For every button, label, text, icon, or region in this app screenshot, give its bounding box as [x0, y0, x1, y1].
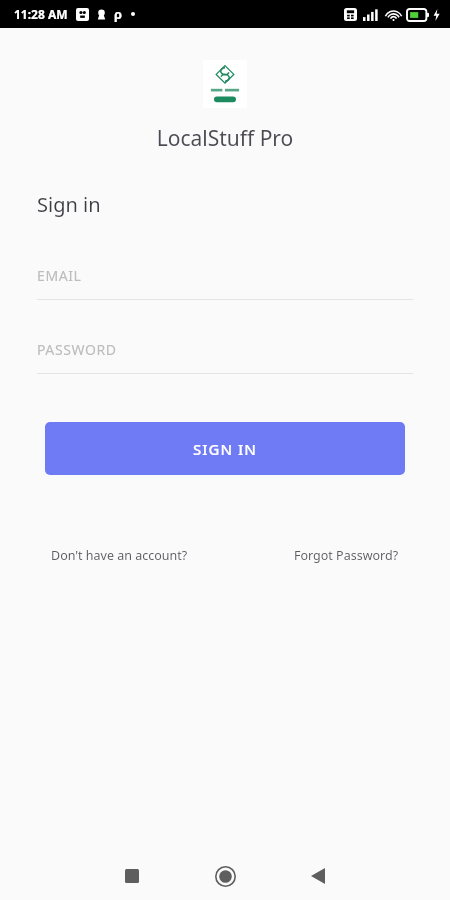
- button[interactable]: Don't have an account?: [45, 541, 194, 570]
- staticText: 11:28 AM: [14, 6, 68, 22]
- button[interactable]: Home: [201, 852, 249, 900]
- staticText: Don't have an account?: [51, 547, 188, 564]
- button[interactable]: PASSWORD: [37, 336, 413, 374]
- button[interactable]: SIGN IN: [45, 422, 405, 475]
- button[interactable]: Forgot Password?: [288, 541, 405, 570]
- staticText: SIGN IN: [193, 439, 257, 459]
- staticText: ρ: [114, 5, 123, 23]
- staticText: Forgot Password?: [294, 547, 399, 564]
- staticText: EMAIL: [37, 266, 82, 285]
- button[interactable]: Recent apps: [108, 852, 156, 900]
- button[interactable]: Back: [294, 852, 342, 900]
- staticText: LocalStuff Pro: [0, 124, 450, 153]
- button[interactable]: EMAIL: [37, 262, 413, 300]
- staticText: PASSWORD: [37, 340, 117, 359]
- staticText: Sign in: [37, 191, 101, 218]
